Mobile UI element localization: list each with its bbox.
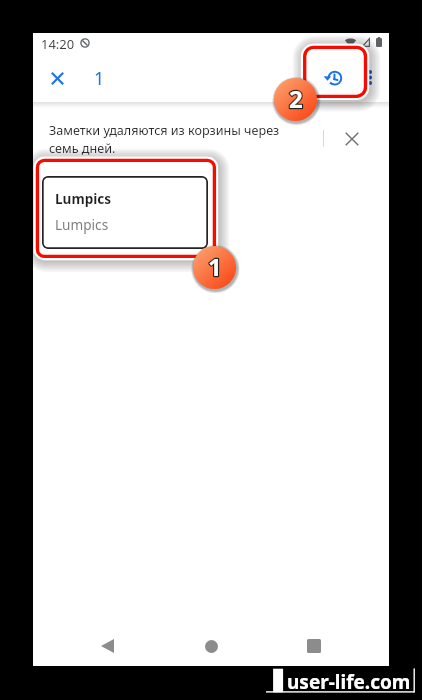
button[interactable]: Restore bbox=[316, 60, 352, 96]
staticText: 1 bbox=[208, 250, 222, 283]
staticText: Lumpics bbox=[55, 189, 112, 208]
staticText: Lumpics bbox=[55, 215, 109, 234]
button[interactable]: Home bbox=[191, 626, 231, 666]
button[interactable]: Close selection bbox=[39, 60, 75, 96]
button[interactable]: More options bbox=[353, 60, 387, 94]
button[interactable]: Back bbox=[87, 626, 127, 666]
staticText: 14:20 bbox=[41, 35, 75, 53]
button[interactable]: Dismiss bbox=[334, 121, 370, 157]
staticText: user-life.com bbox=[287, 669, 411, 695]
staticText: 1 bbox=[94, 66, 105, 91]
button[interactable]: Lumpics bbox=[42, 176, 208, 249]
staticText: Заметки удаляются из корзины через семь … bbox=[49, 122, 297, 156]
staticText: 2 bbox=[289, 82, 303, 115]
staticText: 1 bbox=[208, 250, 222, 283]
staticText: 2 bbox=[289, 82, 303, 115]
button[interactable]: Recents bbox=[294, 626, 334, 666]
